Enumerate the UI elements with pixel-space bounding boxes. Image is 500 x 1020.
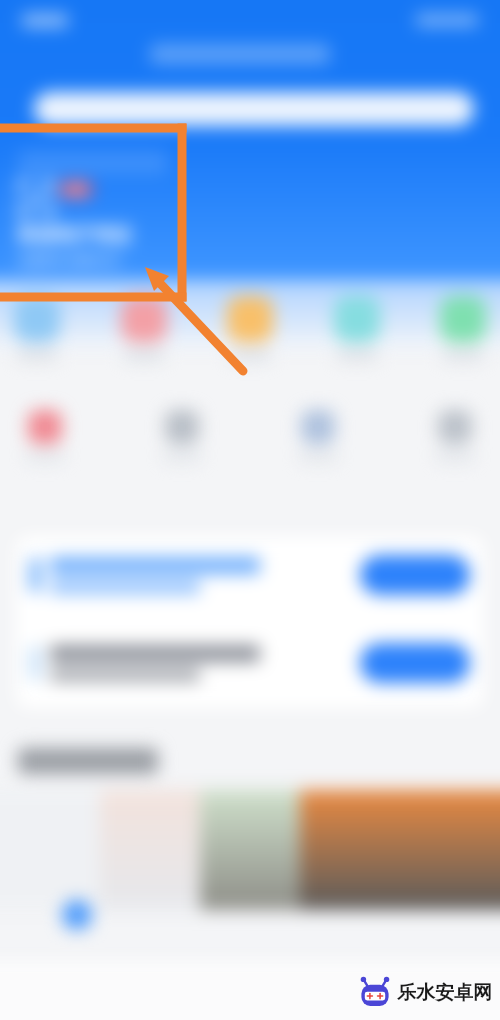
button[interactable]: 操作: [360, 643, 470, 683]
staticText: 红包: [66, 183, 86, 196]
button[interactable]: 医保电子凭证 扫码: [18, 180, 132, 267]
button[interactable]: [34, 92, 474, 126]
button[interactable]: 操作: [16, 536, 484, 614]
staticText: 医保电子凭证: [18, 223, 132, 247]
button[interactable]: 操作: [360, 555, 470, 595]
staticText: 乐水安卓网: [397, 981, 492, 1005]
staticText: 余额查询|刷码支付: [18, 251, 121, 267]
button[interactable]: 操作: [16, 624, 484, 702]
